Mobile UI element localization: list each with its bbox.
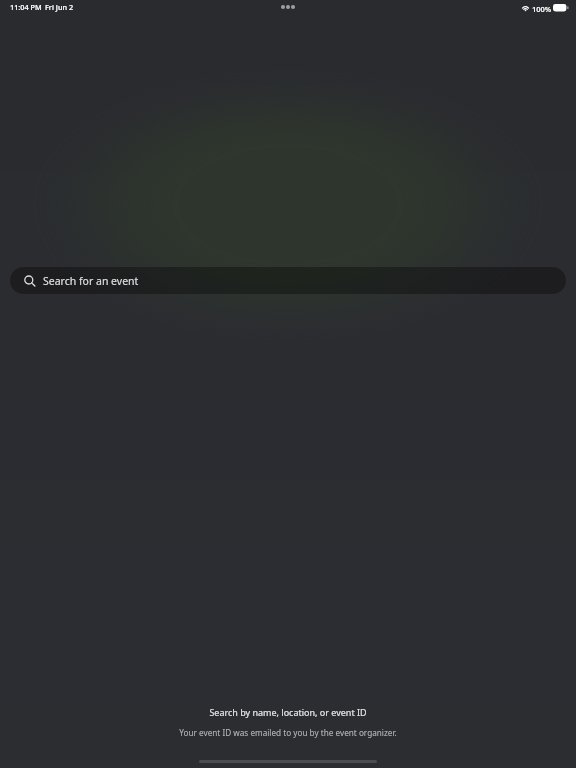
staticText: Search by name, location, or event ID <box>209 706 367 718</box>
staticText: 11:04 PM <box>10 2 42 12</box>
staticText: Search for an event <box>43 274 139 288</box>
button[interactable]: Search <box>10 267 566 294</box>
staticText: 100% <box>532 4 552 14</box>
other: Search <box>24 275 37 288</box>
other: Battery full <box>553 4 569 13</box>
staticText: Fri Jun 2 <box>45 2 74 12</box>
other: Wi-Fi connected <box>521 3 530 12</box>
staticText: Your event ID was emailed to you by the … <box>179 727 397 738</box>
